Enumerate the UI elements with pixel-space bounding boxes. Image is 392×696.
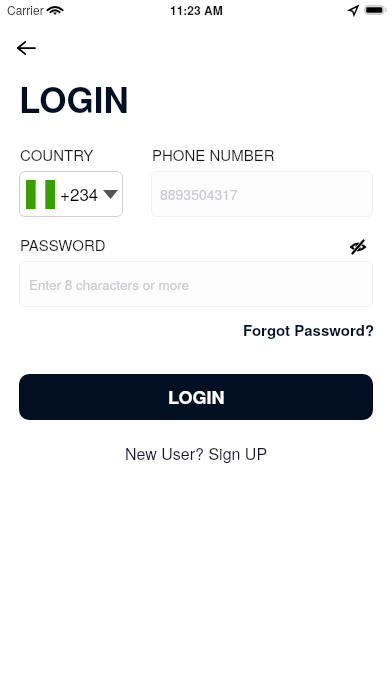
staticText: Enter 8 characters or more: [29, 275, 190, 294]
button[interactable]: Show password: [342, 231, 374, 263]
staticText: COUNTRY: [20, 144, 94, 165]
button[interactable]: Enter 8 characters or more: [19, 261, 373, 307]
staticText: Carrier: [7, 1, 44, 18]
button[interactable]: Back: [8, 30, 44, 66]
staticText: +234: [60, 181, 99, 205]
button[interactable]: +234: [19, 171, 123, 217]
button[interactable]: LOGIN: [19, 374, 373, 420]
staticText: 11:23 AM: [170, 1, 223, 18]
staticText: PASSWORD: [20, 234, 106, 255]
staticText: 8893504317: [160, 184, 238, 204]
staticText: Forgot Password?: [243, 319, 375, 340]
staticText: LOGIN: [168, 384, 225, 410]
button[interactable]: 8893504317: [151, 171, 373, 217]
button[interactable]: Forgot Password?: [238, 315, 380, 344]
staticText: PHONE NUMBER: [152, 144, 275, 165]
button[interactable]: New User? Sign UP: [119, 438, 274, 469]
staticText: LOGIN: [19, 74, 129, 124]
